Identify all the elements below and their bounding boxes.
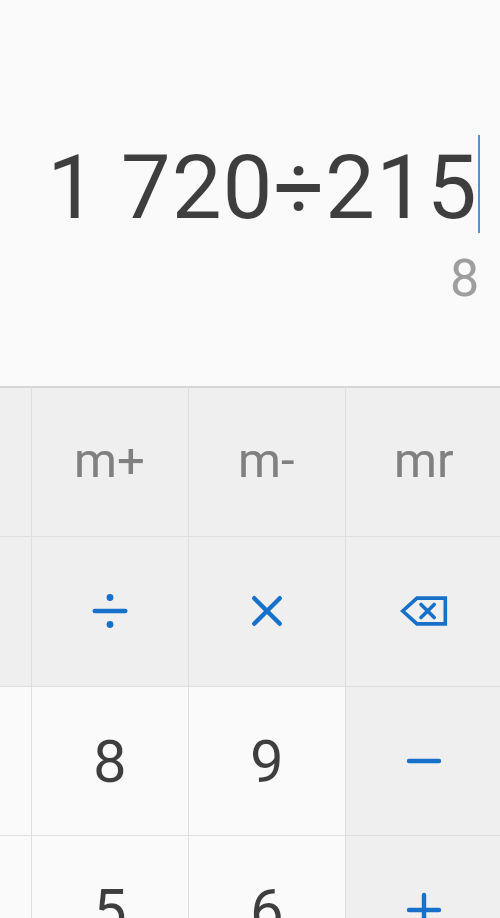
staticText: 9 bbox=[250, 726, 284, 796]
staticText: m- bbox=[238, 432, 295, 489]
button[interactable]: Plus bbox=[345, 835, 500, 918]
button[interactable]: 8 bbox=[31, 686, 188, 836]
button[interactable]: m- bbox=[188, 387, 345, 537]
button[interactable]: Expression field bbox=[0, 0, 500, 385]
button[interactable]: 6 bbox=[188, 835, 345, 918]
button[interactable]: Multiply bbox=[188, 536, 345, 686]
staticText: 1 720÷215 bbox=[47, 135, 478, 239]
button[interactable]: 4 bbox=[0, 835, 32, 918]
button[interactable]: Divide bbox=[31, 536, 188, 686]
button[interactable]: 7 bbox=[0, 686, 32, 836]
staticText: 6 bbox=[250, 875, 284, 918]
staticText: m+ bbox=[74, 432, 145, 489]
button[interactable]: mr bbox=[345, 387, 500, 537]
staticText: mr bbox=[394, 432, 454, 489]
staticText: 8 bbox=[450, 248, 480, 309]
button[interactable]: 9 bbox=[188, 686, 345, 836]
staticText: 8 bbox=[93, 726, 127, 796]
button[interactable]: Minus bbox=[345, 686, 500, 836]
button[interactable]: 5 bbox=[31, 835, 188, 918]
staticText: 5 bbox=[93, 875, 127, 918]
button[interactable]: m+ bbox=[31, 387, 188, 537]
button[interactable]: C bbox=[0, 536, 32, 686]
button[interactable]: Backspace bbox=[345, 536, 500, 686]
button[interactable]: mc bbox=[0, 387, 32, 537]
